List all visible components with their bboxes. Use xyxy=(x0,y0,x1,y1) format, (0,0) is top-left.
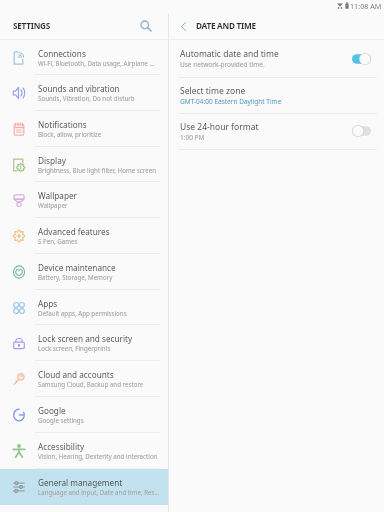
staticText: Wallpaper xyxy=(38,190,160,201)
button[interactable]: Notifications xyxy=(0,111,168,147)
button[interactable]: Wallpaper xyxy=(0,182,168,218)
staticText: Cloud and accounts xyxy=(38,369,160,380)
button[interactable]: Automatic date and time xyxy=(169,40,384,76)
staticText: Accessibility xyxy=(38,441,160,452)
button[interactable]: Toggle on xyxy=(352,53,371,65)
button[interactable]: Accessibility xyxy=(0,433,168,469)
staticText: Select time zone xyxy=(180,85,246,97)
staticText: Google settings xyxy=(38,416,160,424)
staticText: Advanced features xyxy=(38,226,160,237)
staticText: Sounds, Vibration, Do not disturb xyxy=(38,94,160,102)
staticText: Apps xyxy=(38,298,160,309)
staticText: Use 24-hour format xyxy=(180,121,259,133)
staticText: Samsung Cloud, Backup and restore xyxy=(38,380,160,388)
staticText: Google xyxy=(38,405,160,416)
staticText: Notifications xyxy=(38,119,160,130)
staticText: Vision, Hearing, Dexterity and interacti… xyxy=(38,452,160,460)
staticText: Wi-Fi, Bluetooth, Data usage, Airplane m… xyxy=(38,59,160,67)
staticText: Sounds and vibration xyxy=(38,83,160,94)
staticText: Lock screen and security xyxy=(38,333,160,344)
staticText: Connections xyxy=(38,48,160,59)
button[interactable]: Advanced features xyxy=(0,218,168,254)
staticText: Wallpaper xyxy=(38,201,160,209)
staticText: Block, allow, prioritize xyxy=(38,130,160,138)
button[interactable]: Display xyxy=(0,147,168,182)
staticText: General management xyxy=(38,477,160,488)
button[interactable]: General management xyxy=(0,469,168,505)
staticText: Brightness, Blue light filter, Home scre… xyxy=(38,166,160,174)
staticText: 11:08 AM xyxy=(350,1,382,11)
staticText: Use network-provided time. xyxy=(180,60,265,69)
staticText: GMT-04:00 Eastern Daylight Time xyxy=(180,97,282,106)
button[interactable]: Apps xyxy=(0,290,168,325)
button[interactable]: Use 24-hour format xyxy=(169,113,384,149)
button[interactable]: Back xyxy=(172,14,194,39)
button[interactable]: Device maintenance xyxy=(0,254,168,290)
staticText: Lock screen, Fingerprints xyxy=(38,344,160,352)
staticText: Device maintenance xyxy=(38,262,160,273)
button[interactable]: Lock screen and security xyxy=(0,325,168,361)
staticText: Display xyxy=(38,155,160,166)
button[interactable]: Connections xyxy=(0,40,168,75)
button[interactable]: Sounds and vibration xyxy=(0,75,168,111)
button[interactable]: Cloud and accounts xyxy=(0,361,168,397)
button[interactable]: Toggle off xyxy=(352,125,371,137)
staticText: Battery, Storage, Memory xyxy=(38,273,160,281)
staticText: Language and input, Date and time, Reset xyxy=(38,488,160,496)
staticText: SETTINGS xyxy=(13,20,50,31)
button[interactable]: Search xyxy=(136,16,156,36)
staticText: DATE AND TIME xyxy=(196,20,256,31)
button[interactable]: Google xyxy=(0,397,168,433)
staticText: S Pen, Games xyxy=(38,237,160,245)
button[interactable]: Select time zone xyxy=(169,77,384,113)
staticText: Default apps, App permissions xyxy=(38,309,160,317)
staticText: Automatic date and time xyxy=(180,48,279,60)
staticText: 1:00 PM xyxy=(180,133,205,142)
